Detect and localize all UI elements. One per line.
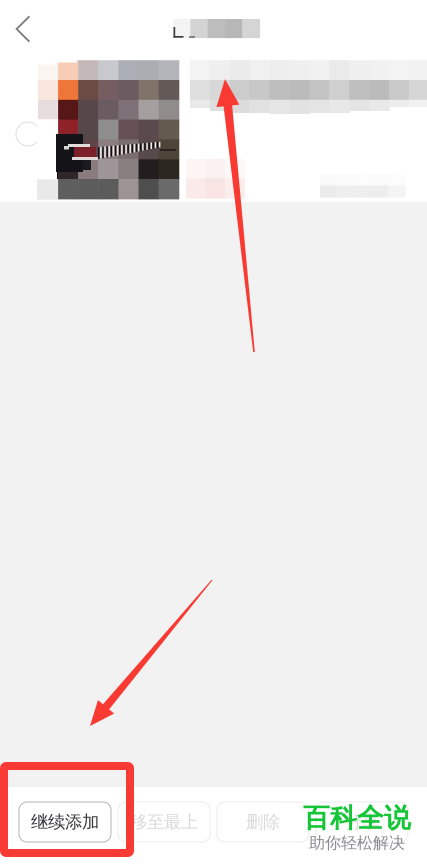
button[interactable]: Select item bbox=[8, 114, 48, 154]
button[interactable]: 继续添加 bbox=[19, 802, 111, 842]
staticText: 助你轻松解决 bbox=[309, 833, 405, 853]
button[interactable]: 移至最上 bbox=[118, 802, 210, 842]
staticText: 移至最上 bbox=[130, 811, 198, 833]
button[interactable]: 删除 bbox=[217, 802, 309, 842]
staticText: 分享 bbox=[345, 811, 379, 833]
button[interactable]: Back bbox=[1, 7, 45, 51]
staticText: 百科全说 bbox=[303, 802, 411, 834]
staticText: 继续添加 bbox=[31, 811, 99, 833]
button[interactable]: 分享 bbox=[316, 802, 408, 842]
staticText: 删除 bbox=[246, 811, 280, 833]
